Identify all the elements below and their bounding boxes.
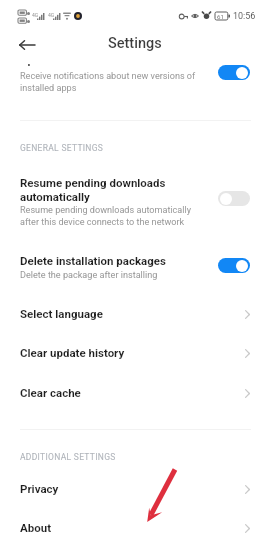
staticText: Privacy: [20, 482, 59, 495]
staticText: 4G: [32, 12, 39, 18]
staticText: Update notifications: [20, 53, 125, 66]
button[interactable]: Resume pending downloads automatically: [0, 170, 271, 232]
staticText: Resume pending downloads automatically a…: [20, 205, 192, 227]
staticText: Resume pending downloads automatically: [20, 176, 166, 204]
staticText: Delete the package after installing: [20, 270, 158, 281]
staticText: Delete installation packages: [20, 254, 166, 267]
button[interactable]: Clear update history: [0, 334, 271, 373]
button[interactable]: About: [0, 509, 271, 548]
staticText: About: [20, 521, 52, 534]
button[interactable]: Select language: [0, 295, 271, 334]
button[interactable]: Switch off: [218, 191, 250, 206]
button[interactable]: Privacy: [0, 470, 271, 509]
staticText: ADDITIONAL SETTINGS: [20, 452, 116, 462]
button[interactable]: Switch on: [218, 258, 250, 273]
staticText: GENERAL SETTINGS: [20, 143, 104, 153]
staticText: Receive notifications about new versions…: [20, 71, 196, 93]
button[interactable]: Switch on: [218, 65, 250, 80]
staticText: Settings: [108, 35, 162, 52]
button[interactable]: Clear cache: [0, 374, 271, 413]
staticText: 61: [217, 13, 224, 20]
staticText: 4G: [48, 12, 55, 18]
staticText: 10:56: [233, 11, 256, 22]
button[interactable]: Back: [15, 33, 39, 57]
staticText: Clear cache: [20, 386, 81, 399]
button[interactable]: Receive notifications about new versions…: [0, 57, 271, 99]
staticText: Select language: [20, 307, 103, 320]
button[interactable]: Delete installation packages: [0, 248, 271, 290]
staticText: Clear update history: [20, 346, 125, 359]
